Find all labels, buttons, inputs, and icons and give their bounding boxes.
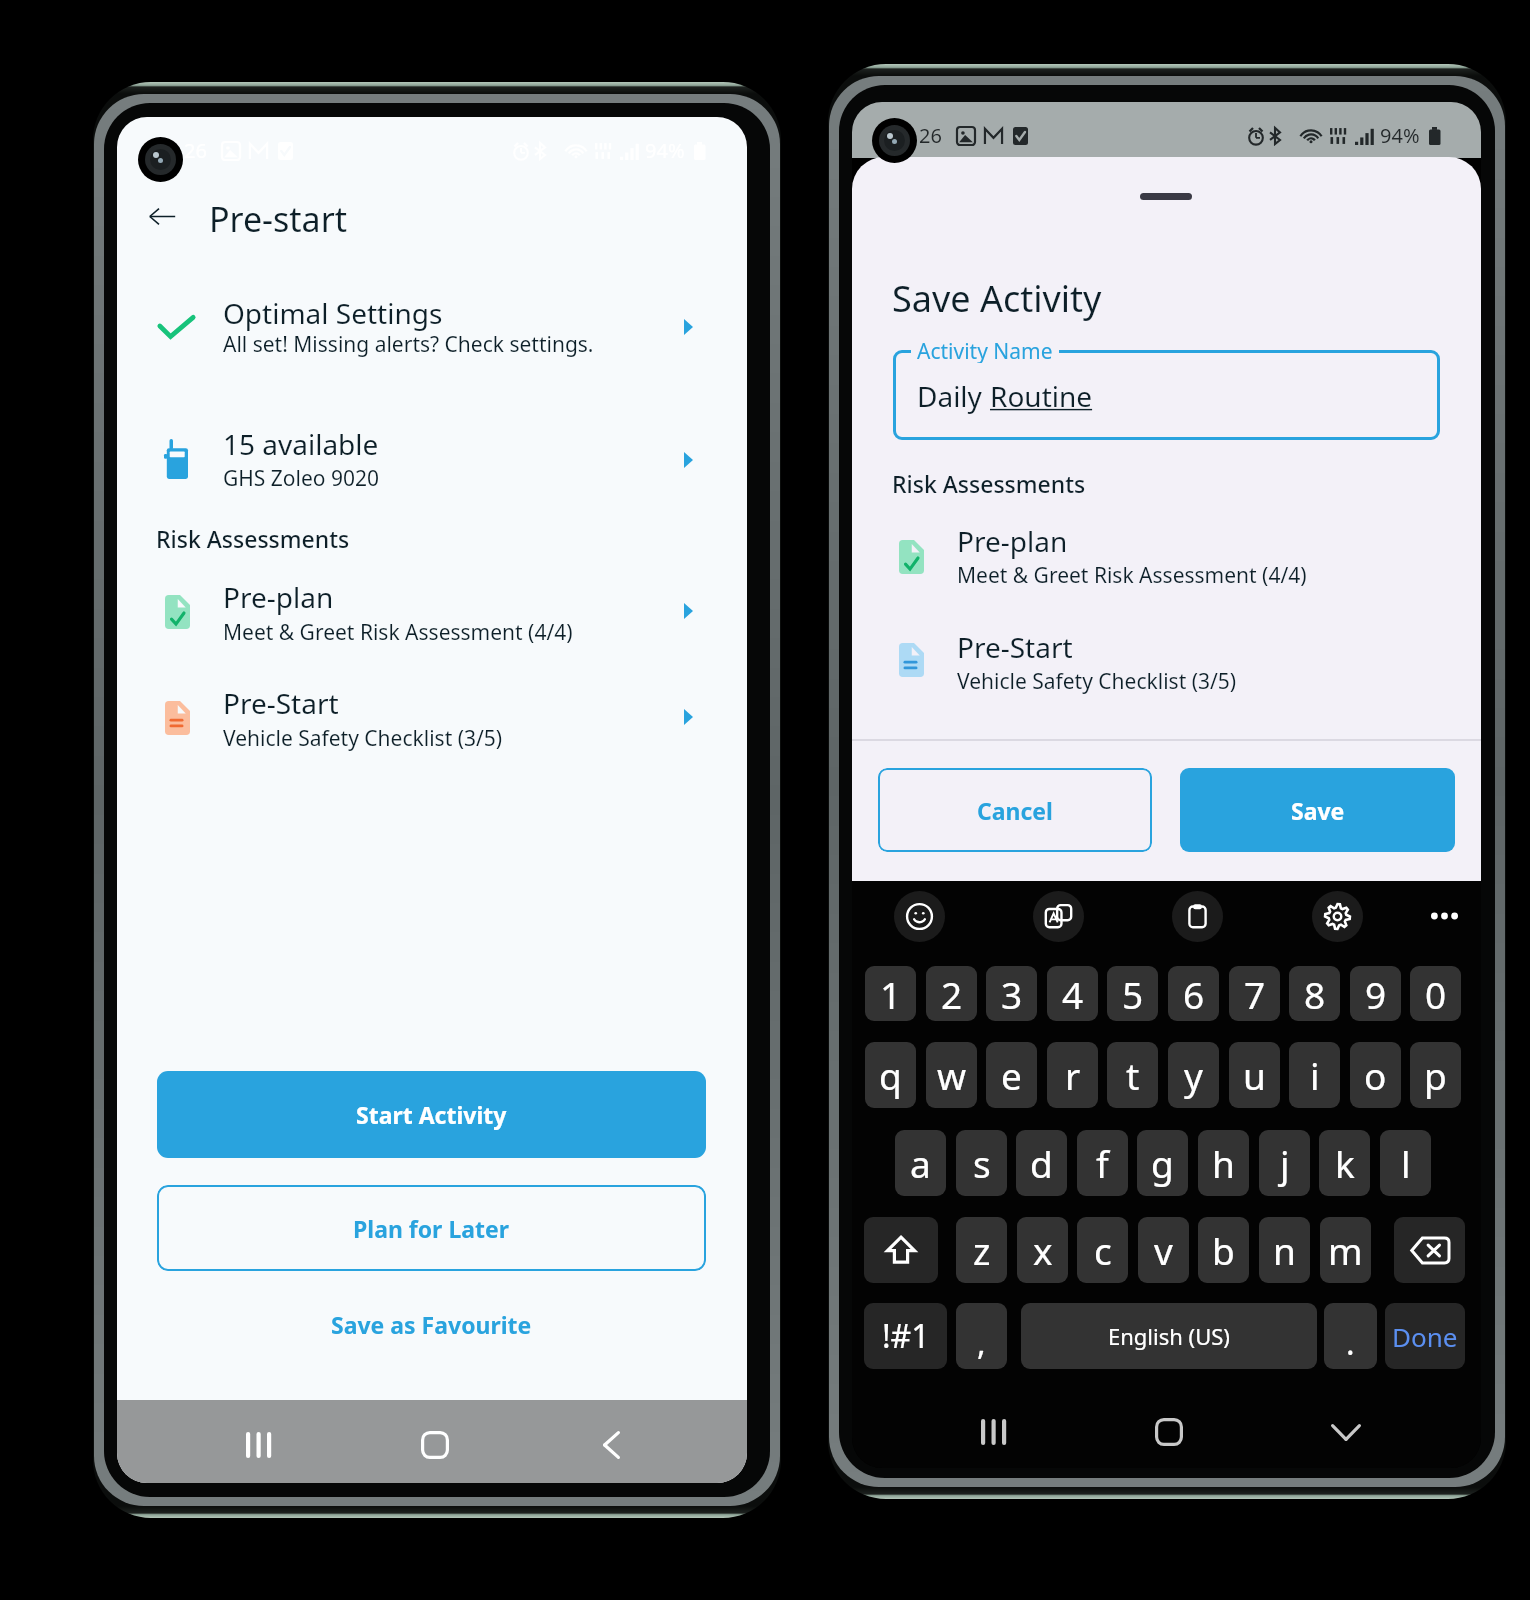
staticText: x bbox=[1033, 1225, 1053, 1275]
staticText: 6 bbox=[1183, 969, 1205, 1019]
staticText: u bbox=[1243, 1050, 1266, 1100]
staticText: k bbox=[1335, 1138, 1355, 1188]
staticText: y bbox=[1184, 1050, 1203, 1100]
staticText: s bbox=[973, 1138, 991, 1188]
staticText: Save bbox=[1291, 795, 1345, 826]
button[interactable] bbox=[852, 510, 1481, 594]
button[interactable]: Save as Favourite bbox=[157, 1295, 706, 1353]
button[interactable]: r bbox=[1047, 1042, 1098, 1108]
button[interactable]: 2 bbox=[926, 966, 977, 1021]
button[interactable]: 6 bbox=[1168, 966, 1219, 1021]
staticText: Done bbox=[1392, 1319, 1458, 1354]
button[interactable] bbox=[117, 282, 747, 366]
button[interactable]: s bbox=[956, 1130, 1007, 1196]
button[interactable]: Clipboard bbox=[1172, 891, 1223, 942]
button[interactable]: g bbox=[1137, 1130, 1188, 1196]
button[interactable]: Plan for Later bbox=[157, 1185, 706, 1271]
staticText: b bbox=[1212, 1225, 1235, 1275]
button[interactable]: f bbox=[1077, 1130, 1128, 1196]
button[interactable]: x bbox=[1017, 1217, 1068, 1283]
staticText: 8 bbox=[1304, 969, 1326, 1019]
button[interactable]: 5 bbox=[1107, 966, 1158, 1021]
staticText: p bbox=[1424, 1050, 1447, 1100]
button[interactable]: Backspace bbox=[1394, 1217, 1465, 1283]
staticText: w bbox=[937, 1050, 967, 1100]
button[interactable]: 4 bbox=[1047, 966, 1098, 1021]
button[interactable]: . bbox=[1324, 1303, 1377, 1369]
button[interactable]: Translate bbox=[1033, 891, 1084, 942]
staticText: Meet & Greet Risk Assessment (4/4) bbox=[957, 561, 1307, 590]
button[interactable]: e bbox=[986, 1042, 1037, 1108]
button[interactable]: Back bbox=[126, 180, 198, 252]
button[interactable]: u bbox=[1229, 1042, 1280, 1108]
staticText: h bbox=[1212, 1138, 1235, 1188]
button[interactable]: y bbox=[1168, 1042, 1219, 1108]
button[interactable]: i bbox=[1289, 1042, 1340, 1108]
button[interactable] bbox=[117, 672, 747, 756]
button[interactable]: p bbox=[1410, 1042, 1461, 1108]
button[interactable]: 9 bbox=[1350, 966, 1401, 1021]
button[interactable]: Recents bbox=[220, 1407, 296, 1483]
staticText: Pre-start bbox=[209, 196, 348, 242]
staticText: Start Activity bbox=[356, 1099, 507, 1130]
staticText: v bbox=[1154, 1225, 1173, 1275]
button[interactable]: b bbox=[1198, 1217, 1249, 1283]
staticText: Pre-Start bbox=[957, 628, 1073, 666]
button[interactable]: , bbox=[956, 1303, 1007, 1369]
staticText: d bbox=[1030, 1138, 1053, 1188]
staticText: !#1 bbox=[882, 1314, 930, 1358]
button[interactable]: 0 bbox=[1410, 966, 1461, 1021]
staticText: n bbox=[1273, 1225, 1296, 1275]
button[interactable]: 7 bbox=[1229, 966, 1280, 1021]
staticText: 5 bbox=[1122, 969, 1144, 1019]
button[interactable]: h bbox=[1198, 1130, 1249, 1196]
button[interactable]: k bbox=[1319, 1130, 1370, 1196]
button[interactable]: Keyboard settings bbox=[1312, 891, 1363, 942]
button[interactable]: z bbox=[956, 1217, 1007, 1283]
button[interactable]: o bbox=[1350, 1042, 1401, 1108]
button[interactable]: Emoji bbox=[894, 891, 945, 942]
button[interactable]: l bbox=[1380, 1130, 1431, 1196]
button[interactable]: Hide keyboard bbox=[1308, 1394, 1384, 1468]
button[interactable]: q bbox=[865, 1042, 916, 1108]
staticText: f bbox=[1096, 1138, 1109, 1188]
button[interactable]: English (US) bbox=[1021, 1303, 1317, 1369]
staticText: Risk Assessments bbox=[892, 468, 1086, 499]
button[interactable]: 8 bbox=[1289, 966, 1340, 1021]
button[interactable]: Shift bbox=[864, 1217, 938, 1283]
button[interactable] bbox=[117, 413, 747, 497]
button[interactable]: w bbox=[926, 1042, 977, 1108]
button[interactable]: t bbox=[1107, 1042, 1158, 1108]
button[interactable]: Done bbox=[1385, 1303, 1465, 1369]
staticText: 26 bbox=[919, 122, 942, 149]
button[interactable]: 3 bbox=[986, 966, 1037, 1021]
button[interactable]: More options bbox=[1424, 899, 1464, 933]
staticText: 7 bbox=[1244, 969, 1266, 1019]
button[interactable]: Recents bbox=[955, 1394, 1031, 1468]
staticText: Meet & Greet Risk Assessment (4/4) bbox=[223, 618, 573, 647]
button[interactable]: Home bbox=[397, 1407, 473, 1483]
button[interactable]: Cancel bbox=[878, 768, 1152, 852]
button[interactable]: v bbox=[1138, 1217, 1189, 1283]
button[interactable]: 1 bbox=[865, 966, 916, 1021]
button[interactable]: Save bbox=[1180, 768, 1455, 852]
staticText: Plan for Later bbox=[353, 1213, 510, 1244]
button[interactable]: Back bbox=[573, 1407, 649, 1483]
staticText: GHS Zoleo 9020 bbox=[223, 464, 380, 493]
button[interactable]: !#1 bbox=[864, 1303, 947, 1369]
button[interactable]: d bbox=[1016, 1130, 1067, 1196]
button[interactable]: m bbox=[1320, 1217, 1371, 1283]
button[interactable]: a bbox=[895, 1130, 946, 1196]
button[interactable]: Home bbox=[1131, 1394, 1207, 1468]
staticText: t bbox=[1126, 1050, 1140, 1100]
button[interactable] bbox=[893, 350, 1440, 440]
button[interactable] bbox=[852, 616, 1481, 700]
button[interactable] bbox=[117, 566, 747, 650]
button[interactable]: Start Activity bbox=[157, 1071, 706, 1158]
button[interactable]: c bbox=[1077, 1217, 1128, 1283]
staticText: g bbox=[1151, 1138, 1174, 1188]
button[interactable]: n bbox=[1259, 1217, 1310, 1283]
button[interactable]: j bbox=[1259, 1130, 1310, 1196]
